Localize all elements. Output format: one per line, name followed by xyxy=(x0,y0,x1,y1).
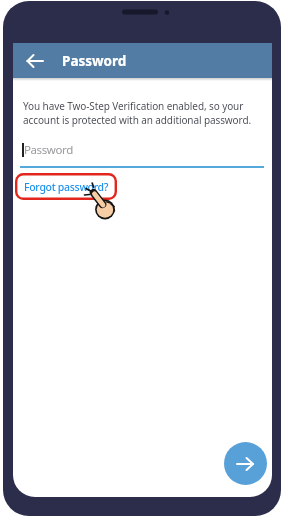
staticText: Forgot password? xyxy=(24,180,109,194)
button[interactable] xyxy=(13,43,57,78)
staticText: Password xyxy=(62,52,127,70)
button[interactable] xyxy=(20,136,264,168)
staticText: You have Two-Step Verification enabled, … xyxy=(23,99,244,113)
button[interactable]: Password xyxy=(13,43,272,78)
staticText: Password xyxy=(24,142,73,158)
button[interactable] xyxy=(224,442,267,485)
staticText: account is protected with an additional … xyxy=(23,113,252,127)
button[interactable]: Forgot password? xyxy=(15,173,117,200)
